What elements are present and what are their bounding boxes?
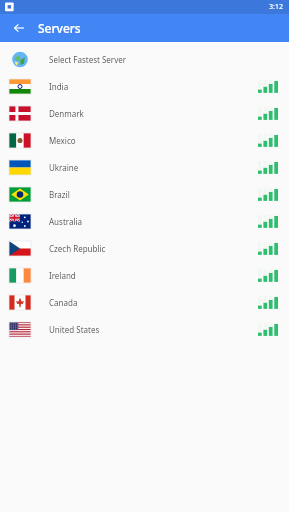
staticText: United States [49, 324, 100, 335]
button[interactable]: Back [8, 17, 30, 39]
staticText: Czech Republic [49, 243, 106, 254]
button[interactable]: Australia [0, 208, 289, 235]
button[interactable]: Ukraine [0, 154, 289, 181]
staticText: Australia [49, 216, 83, 227]
button[interactable]: India [0, 73, 289, 100]
button[interactable]: Brazil [0, 181, 289, 208]
button[interactable]: Select Fastest Server [0, 46, 289, 73]
staticText: 3:12 [269, 2, 283, 12]
staticText: Canada [49, 297, 78, 308]
button[interactable]: United States [0, 316, 289, 343]
staticText: Denmark [49, 108, 84, 119]
staticText: Ireland [49, 270, 76, 281]
button[interactable]: Czech Republic [0, 235, 289, 262]
button[interactable]: Canada [0, 289, 289, 316]
button[interactable]: Denmark [0, 100, 289, 127]
staticText: Select Fastest Server [49, 54, 127, 65]
staticText: India [49, 81, 69, 92]
staticText: Servers [38, 20, 81, 36]
button[interactable]: Ireland [0, 262, 289, 289]
button[interactable]: Mexico [0, 127, 289, 154]
staticText: Mexico [49, 135, 76, 146]
staticText: Ukraine [49, 162, 79, 173]
staticText: Brazil [49, 189, 70, 200]
